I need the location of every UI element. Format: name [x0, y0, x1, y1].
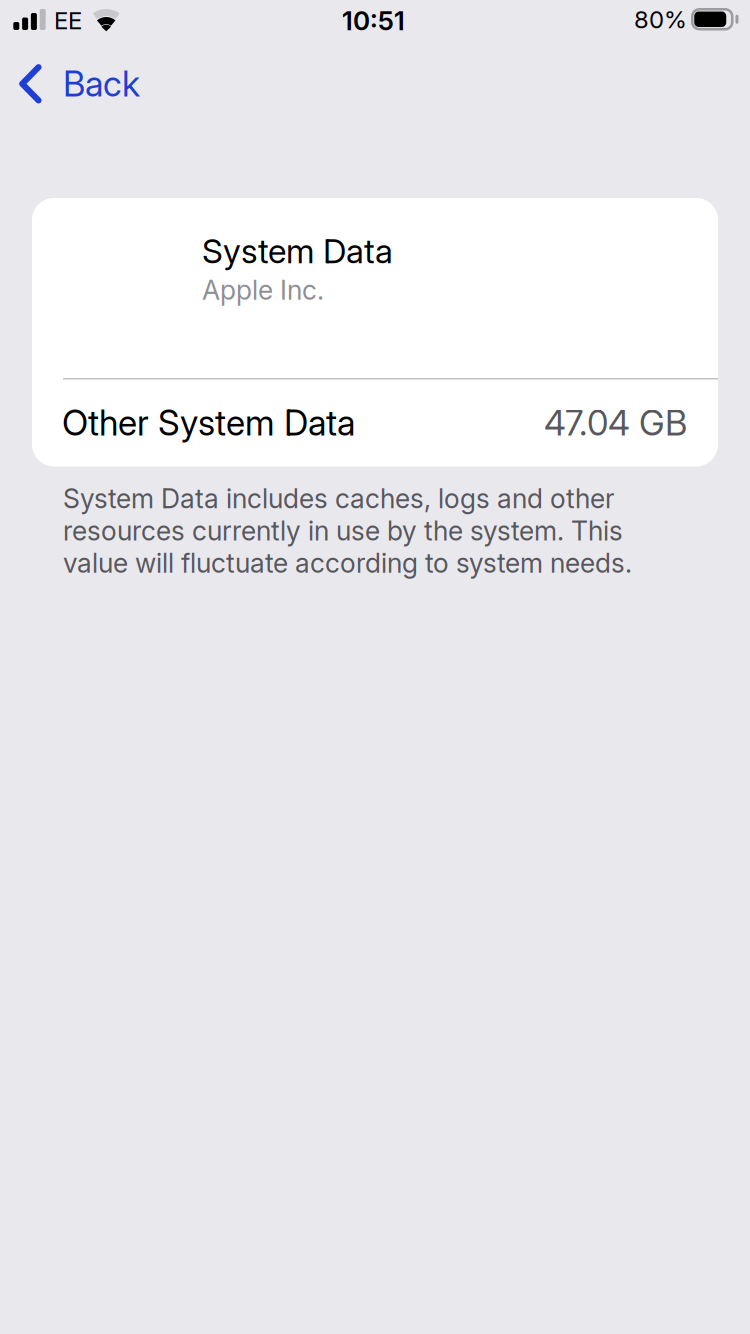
staticText: 47.04 GB	[544, 402, 687, 444]
staticText: Other System Data	[62, 402, 355, 444]
button[interactable]: Back	[0, 54, 154, 106]
staticText: System Data includes caches, logs and ot…	[63, 482, 632, 579]
staticText: System Data	[202, 231, 393, 271]
staticText: Apple Inc.	[202, 274, 324, 306]
staticText: EE	[54, 6, 82, 35]
staticText: Back	[63, 63, 140, 105]
staticText: 80%	[634, 5, 687, 34]
button[interactable]: Other System Data	[32, 379, 718, 466]
staticText: 10:51	[342, 5, 405, 36]
